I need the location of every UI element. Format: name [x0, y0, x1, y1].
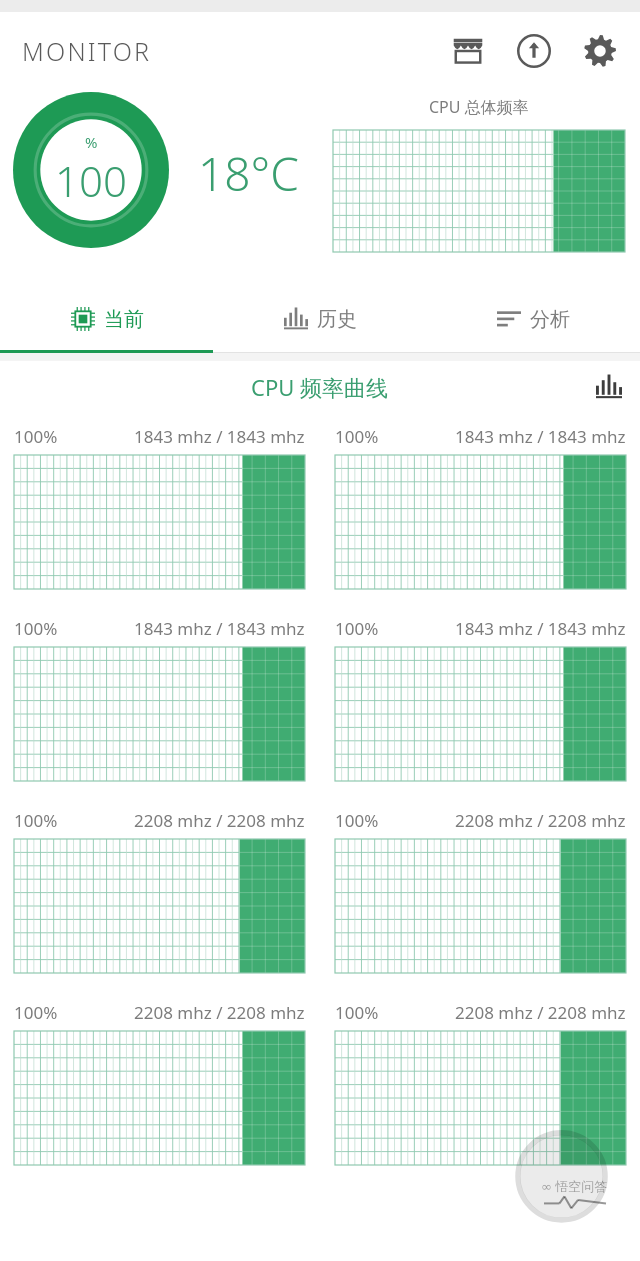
button[interactable]: Store [446, 29, 490, 73]
button[interactable]: 100% [335, 1001, 626, 1165]
staticText: 100% [14, 809, 58, 832]
button[interactable]: 100% [14, 809, 305, 973]
button[interactable]: Upgrade [512, 29, 556, 73]
button[interactable]: Settings [578, 29, 622, 73]
staticText: 100% [14, 1001, 58, 1024]
button[interactable]: 100% [14, 425, 305, 589]
staticText: 2208 mhz / 2208 mhz [134, 1001, 305, 1024]
staticText: 2208 mhz / 2208 mhz [134, 809, 305, 832]
staticText: CPU 频率曲线 [251, 372, 389, 402]
staticText: MONITOR [22, 34, 152, 68]
button[interactable]: 分析 [427, 288, 640, 350]
staticText: 100% [335, 1001, 379, 1024]
staticText: 1843 mhz / 1843 mhz [134, 617, 305, 640]
staticText: 100% [335, 425, 379, 448]
staticText: 1843 mhz / 1843 mhz [455, 425, 626, 448]
staticText: 1843 mhz / 1843 mhz [455, 617, 626, 640]
staticText: 100% [335, 617, 379, 640]
staticText: ∞ 悟空问答 [541, 1177, 608, 1195]
staticText: % [85, 132, 98, 152]
button[interactable]: 100% [335, 617, 626, 781]
staticText: 2208 mhz / 2208 mhz [455, 809, 626, 832]
staticText: 2208 mhz / 2208 mhz [455, 1001, 626, 1024]
button[interactable]: 100% [14, 617, 305, 781]
staticText: 分析 [530, 307, 570, 332]
staticText: 1843 mhz / 1843 mhz [134, 425, 305, 448]
staticText: 当前 [104, 307, 144, 332]
staticText: 100% [335, 809, 379, 832]
staticText: 100 [55, 152, 127, 209]
button[interactable]: Chart view [592, 370, 626, 404]
button[interactable]: 100% [335, 809, 626, 973]
staticText: CPU 总体频率 [429, 96, 529, 118]
button[interactable]: 100% [335, 425, 626, 589]
button[interactable]: 当前 [0, 288, 214, 350]
staticText: 100% [14, 617, 58, 640]
button[interactable]: 100% [14, 1001, 305, 1165]
staticText: 18°C [198, 142, 299, 205]
staticText: 100% [14, 425, 58, 448]
staticText: 历史 [317, 307, 357, 332]
button[interactable]: 历史 [214, 288, 427, 350]
button[interactable]: % [13, 92, 169, 248]
